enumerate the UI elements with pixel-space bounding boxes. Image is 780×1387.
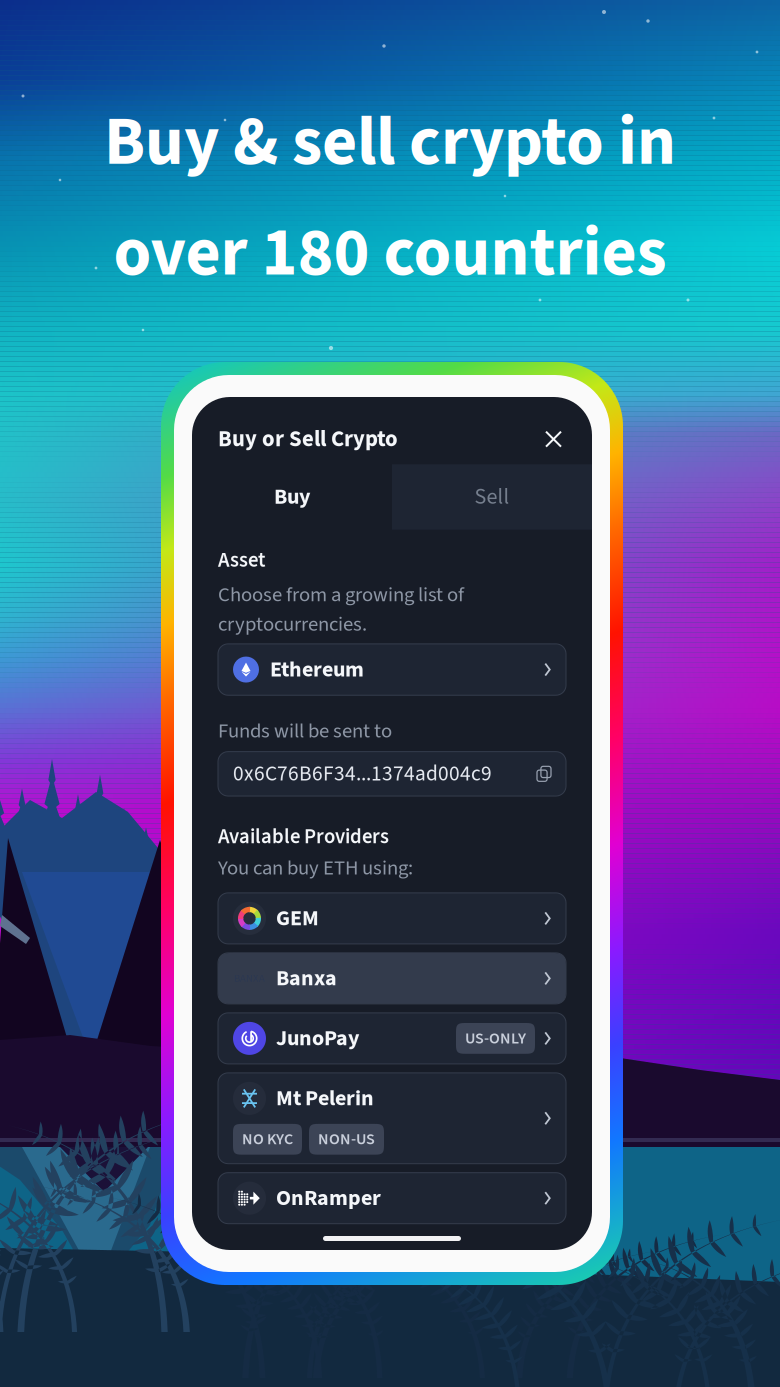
staticText: OnRamper	[276, 1182, 381, 1214]
button[interactable]: Mt Pelerin	[218, 1073, 566, 1164]
staticText: Buy	[274, 481, 310, 513]
staticText: Mt Pelerin	[276, 1083, 374, 1114]
staticText: NO KYC	[242, 1128, 293, 1151]
button[interactable]: GEM	[218, 893, 566, 944]
staticText: JunoPay	[276, 1023, 359, 1054]
staticText: US-ONLY	[465, 1027, 526, 1050]
staticText: Choose from a growing list of	[218, 580, 464, 609]
staticText: Buy or Sell Crypto	[218, 423, 398, 455]
staticText: GEM	[276, 903, 319, 934]
staticText: Sell	[474, 481, 509, 513]
button[interactable]: Ethereum	[218, 644, 566, 695]
button[interactable]: Close	[541, 427, 566, 452]
staticText: NON-US	[318, 1128, 375, 1151]
staticText: Available Providers	[218, 822, 389, 851]
staticText: You can buy ETH using:	[218, 853, 413, 883]
button[interactable]: Sell	[392, 464, 592, 530]
staticText: over 180 countries	[113, 205, 666, 302]
staticText: Ethereum	[270, 654, 364, 685]
staticText: 0x6C76B6F34...1374ad004c9	[233, 759, 492, 789]
staticText: Banxa	[276, 963, 337, 994]
staticText: Funds will be sent to	[218, 716, 392, 746]
button[interactable]: JunoPay	[218, 1013, 566, 1064]
staticText: Asset	[218, 546, 265, 575]
staticText: cryptocurrencies.	[218, 609, 367, 639]
button[interactable]: OnRamper	[218, 1173, 566, 1224]
button[interactable]: Buy	[192, 464, 392, 530]
staticText: Buy & sell crypto in	[104, 94, 676, 191]
button[interactable]: BANXA	[218, 953, 566, 1004]
